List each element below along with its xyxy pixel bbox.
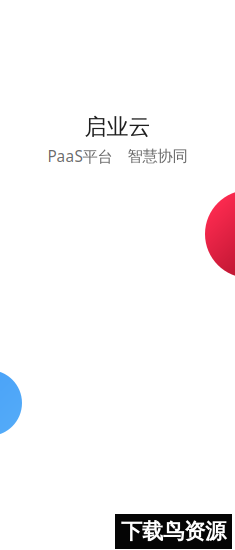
staticText: 启业云 xyxy=(84,113,150,141)
staticText: 下载鸟资源 xyxy=(121,518,226,545)
staticText: PaaS平台 xyxy=(47,146,112,167)
staticText: 智慧协同 xyxy=(127,146,187,166)
